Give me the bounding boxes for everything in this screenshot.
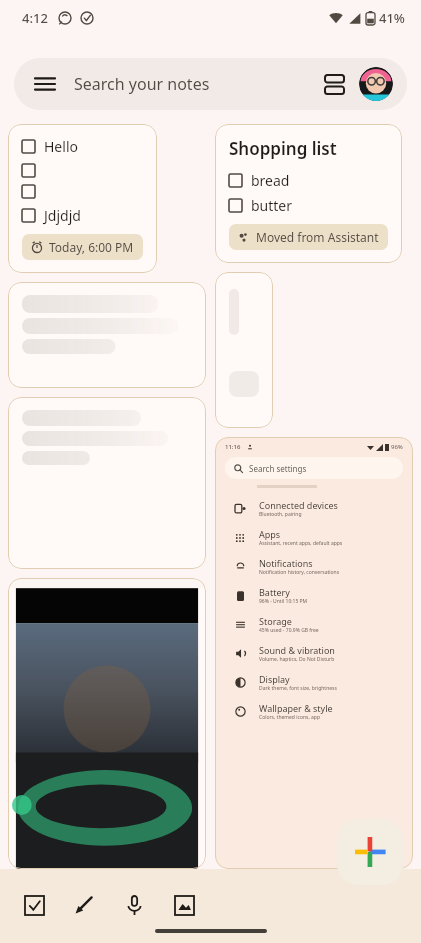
staticText: Colors, themed icons, app — [259, 714, 320, 721]
staticText: bread — [251, 171, 290, 190]
button[interactable]: Open navigation menu — [14, 58, 407, 110]
button[interactable] — [8, 282, 206, 388]
staticText: Dark theme, font size, brightness — [259, 685, 337, 692]
button[interactable] — [8, 578, 206, 869]
button[interactable]: Search settings — [225, 457, 403, 479]
staticText: 45% used - 70.9% GB free — [259, 627, 319, 634]
button[interactable] — [215, 272, 273, 428]
staticText: Search settings — [249, 463, 307, 474]
staticText: Sound & vibration — [259, 644, 335, 656]
staticText: Apps — [259, 528, 281, 540]
staticText: Shopping list — [229, 137, 337, 160]
staticText: Connected devices — [259, 499, 338, 511]
button[interactable]: New voice note — [112, 883, 156, 927]
staticText: Jdjdjd — [44, 206, 81, 225]
staticText: Wallpaper & style — [259, 702, 333, 714]
staticText: 96% — [391, 443, 403, 451]
staticText: 11:16 — [225, 443, 241, 451]
staticText: 96% - Until 10:15 PM — [259, 598, 308, 605]
button[interactable]: Today, 6:00 PM — [22, 234, 143, 260]
staticText: Search your notes — [74, 73, 210, 95]
button[interactable] — [8, 397, 206, 569]
button[interactable]: New list — [12, 883, 56, 927]
button[interactable]: Change list view — [317, 67, 351, 101]
staticText: Storage — [259, 615, 292, 627]
staticText: Moved from Assistant — [256, 229, 379, 245]
button[interactable]: Create new note — [337, 819, 403, 885]
button[interactable]: Account — [359, 67, 393, 101]
button[interactable]: New drawing — [62, 883, 106, 927]
staticText: 41% — [379, 9, 405, 27]
button[interactable]: 11:16 — [215, 437, 413, 869]
staticText: Assistant, recent apps, default apps — [259, 540, 343, 547]
staticText: butter — [251, 196, 293, 215]
staticText: Notifications — [259, 557, 313, 569]
staticText: Volume, haptics, Do Not Disturb — [259, 656, 335, 663]
staticText: 4:12 — [22, 9, 48, 27]
staticText: Bluetooth, pairing — [259, 511, 302, 518]
button[interactable]: Open navigation menu — [28, 67, 62, 101]
staticText: Battery — [259, 586, 290, 598]
staticText: Hello — [44, 137, 78, 156]
button[interactable]: Shopping list — [215, 124, 402, 263]
button[interactable]: New note with image — [162, 883, 206, 927]
button[interactable]: Hello — [8, 124, 157, 273]
button[interactable]: Moved from Assistant — [229, 224, 388, 250]
staticText: Notification history, conversations — [259, 569, 340, 576]
staticText: Display — [259, 673, 290, 685]
staticText: Today, 6:00 PM — [49, 239, 134, 255]
